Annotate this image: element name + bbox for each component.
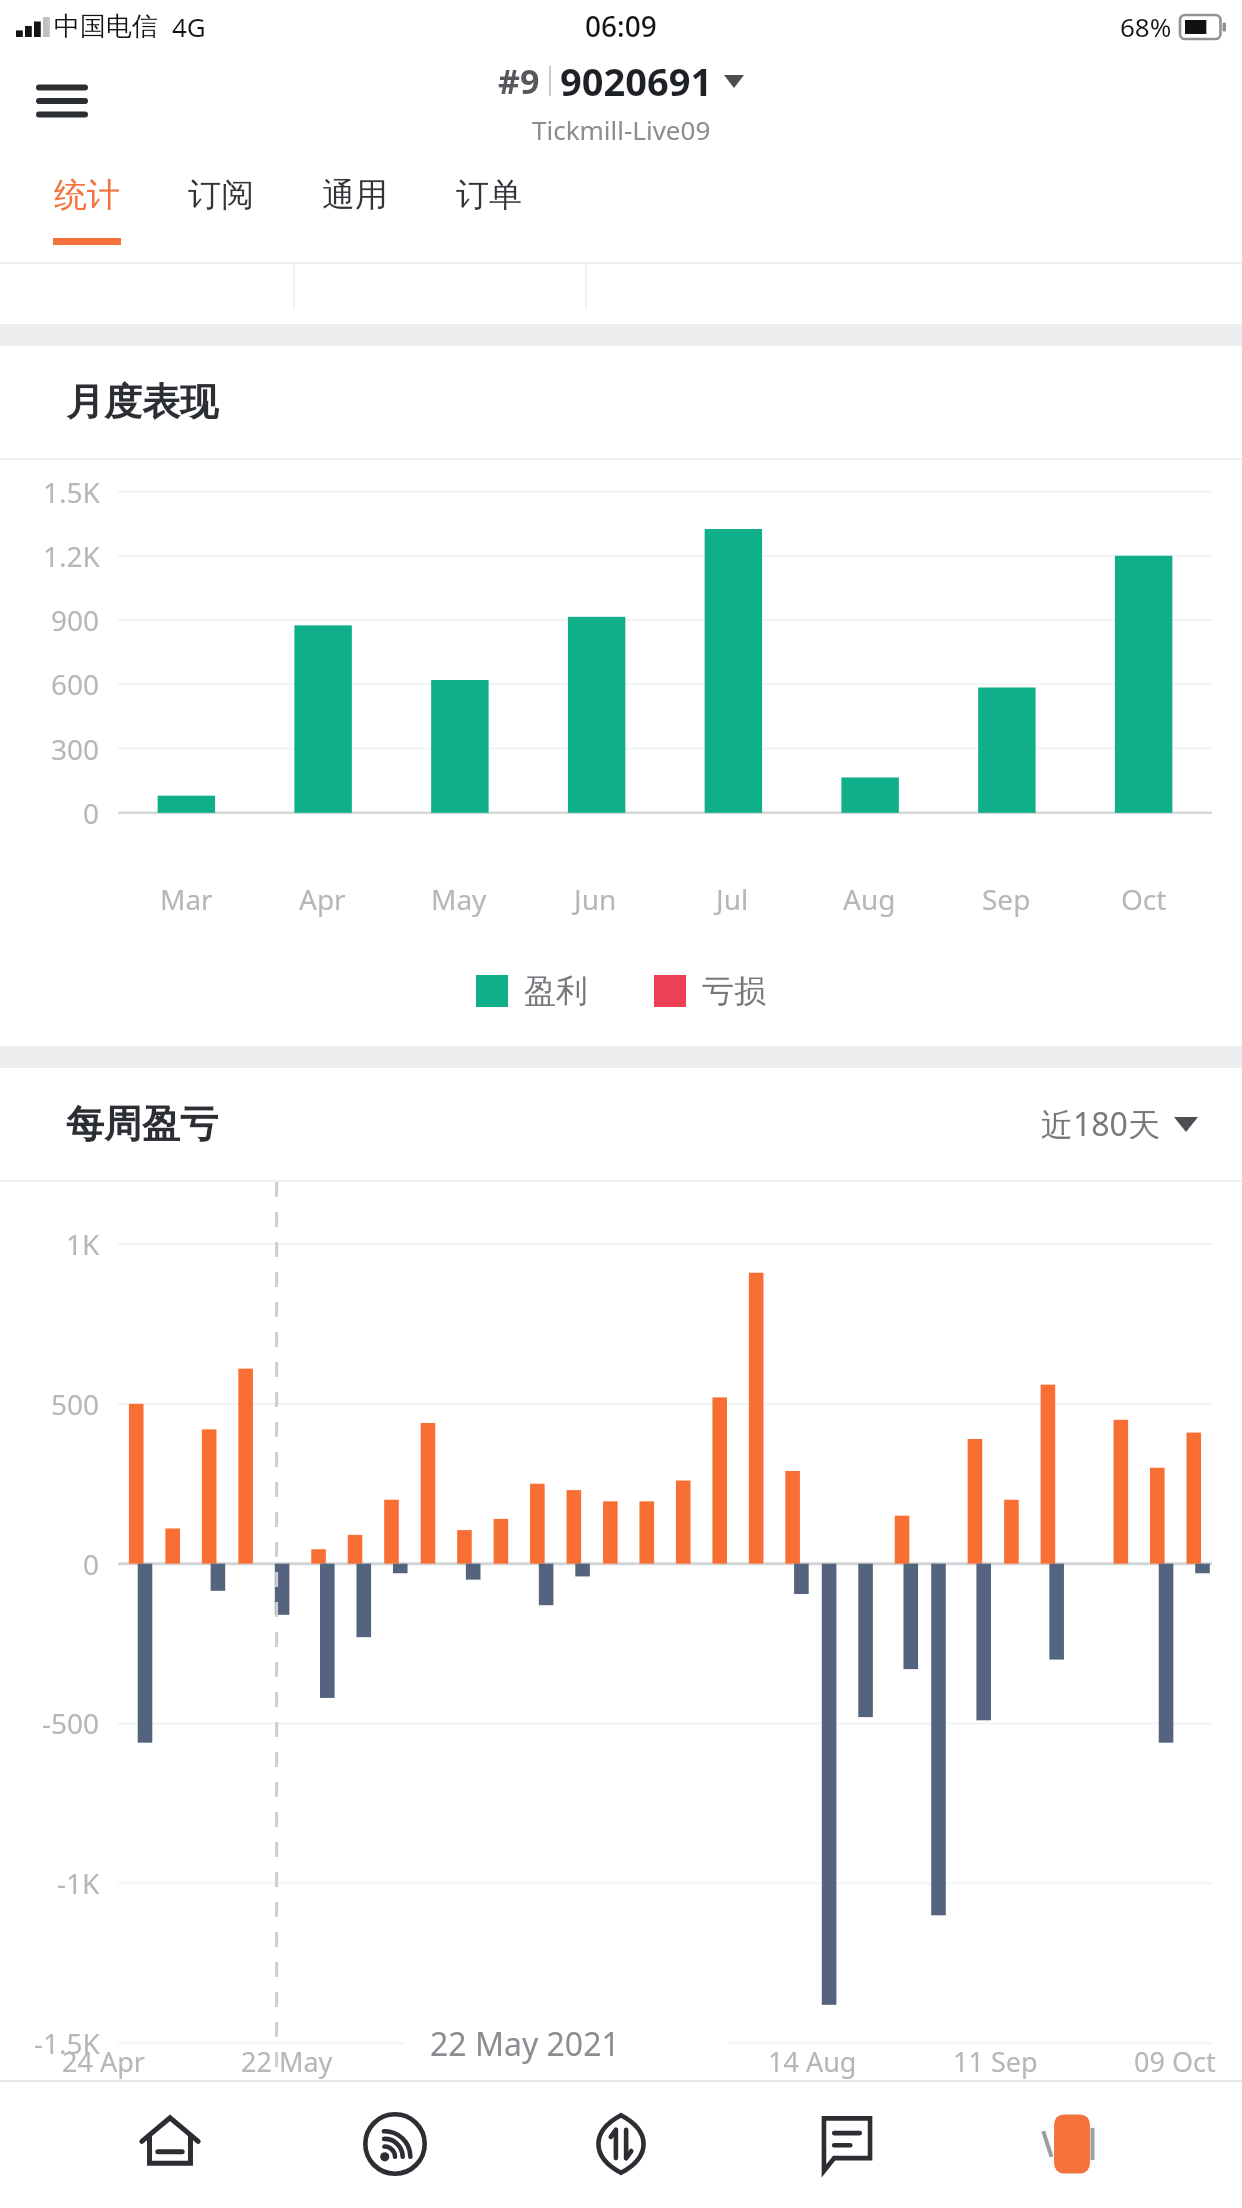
staticText: Aug bbox=[843, 880, 896, 918]
staticText: -500 bbox=[42, 1704, 100, 1742]
button[interactable]: Trade bbox=[565, 2088, 677, 2200]
staticText: #9 bbox=[498, 58, 540, 104]
staticText: 通用 bbox=[322, 174, 388, 216]
staticText: 24 Apr bbox=[62, 2043, 145, 2080]
staticText: 19 Jun bbox=[429, 2043, 508, 2080]
staticText: 订阅 bbox=[188, 174, 254, 216]
staticText: 1.5K bbox=[43, 473, 100, 511]
staticText: 14 Aug bbox=[768, 2043, 857, 2080]
staticText: Sep bbox=[982, 880, 1031, 918]
staticText: 09 Oct bbox=[1134, 2043, 1216, 2080]
staticText: -1K bbox=[57, 1864, 100, 1902]
staticText: -1.5K bbox=[34, 2024, 100, 2062]
button[interactable]: 通用 bbox=[288, 150, 422, 262]
staticText: 300 bbox=[51, 730, 100, 768]
staticText: 17 Jul bbox=[604, 2043, 673, 2080]
staticText: 1K bbox=[66, 1225, 100, 1263]
staticText: 06:09 bbox=[585, 7, 657, 45]
staticText: 近180天 bbox=[1041, 1102, 1160, 1146]
button[interactable]: Profile bbox=[1016, 2088, 1128, 2200]
staticText: 订单 bbox=[456, 174, 522, 216]
staticText: 22 May bbox=[241, 2043, 333, 2080]
staticText: Tickmill-Live09 bbox=[532, 112, 711, 147]
staticText: 0 bbox=[83, 1545, 100, 1583]
staticText: 亏损 bbox=[702, 971, 766, 1011]
button[interactable]: 盈利 bbox=[476, 971, 588, 1011]
button[interactable]: 亏损 bbox=[654, 971, 766, 1011]
staticText: 68% bbox=[1120, 9, 1172, 44]
staticText: 0 bbox=[83, 794, 100, 832]
staticText: 每周盈亏 bbox=[66, 1100, 218, 1148]
staticText: May bbox=[431, 880, 487, 918]
staticText: Mar bbox=[160, 880, 213, 918]
staticText: 11 Sep bbox=[953, 2043, 1038, 2080]
button[interactable]: Messages bbox=[791, 2088, 903, 2200]
staticText: 900 bbox=[51, 601, 100, 639]
button[interactable]: Menu bbox=[26, 65, 98, 137]
staticText: 600 bbox=[51, 665, 100, 703]
staticText: 中国电信 bbox=[54, 10, 158, 43]
button[interactable]: Home bbox=[114, 2088, 226, 2200]
button[interactable]: #9 bbox=[498, 55, 744, 147]
staticText: Oct bbox=[1121, 880, 1167, 918]
button[interactable]: 统计 bbox=[20, 150, 154, 262]
staticText: 统计 bbox=[54, 174, 120, 216]
staticText: 22 May 2021 bbox=[430, 2022, 620, 2066]
staticText: Jun bbox=[574, 880, 617, 918]
staticText: 500 bbox=[51, 1385, 100, 1423]
staticText: 月度表现 bbox=[66, 378, 218, 426]
button[interactable]: Quotes bbox=[339, 2088, 451, 2200]
staticText: 4G bbox=[172, 9, 206, 44]
staticText: 1.2K bbox=[43, 537, 100, 575]
staticText: 9020691 bbox=[560, 55, 713, 107]
staticText: Apr bbox=[299, 880, 346, 918]
button[interactable]: 近180天 bbox=[1041, 1102, 1198, 1146]
staticText: Jul bbox=[716, 880, 749, 918]
button[interactable]: 订阅 bbox=[154, 150, 288, 262]
button[interactable]: 订单 bbox=[422, 150, 556, 262]
staticText: 盈利 bbox=[524, 971, 588, 1011]
